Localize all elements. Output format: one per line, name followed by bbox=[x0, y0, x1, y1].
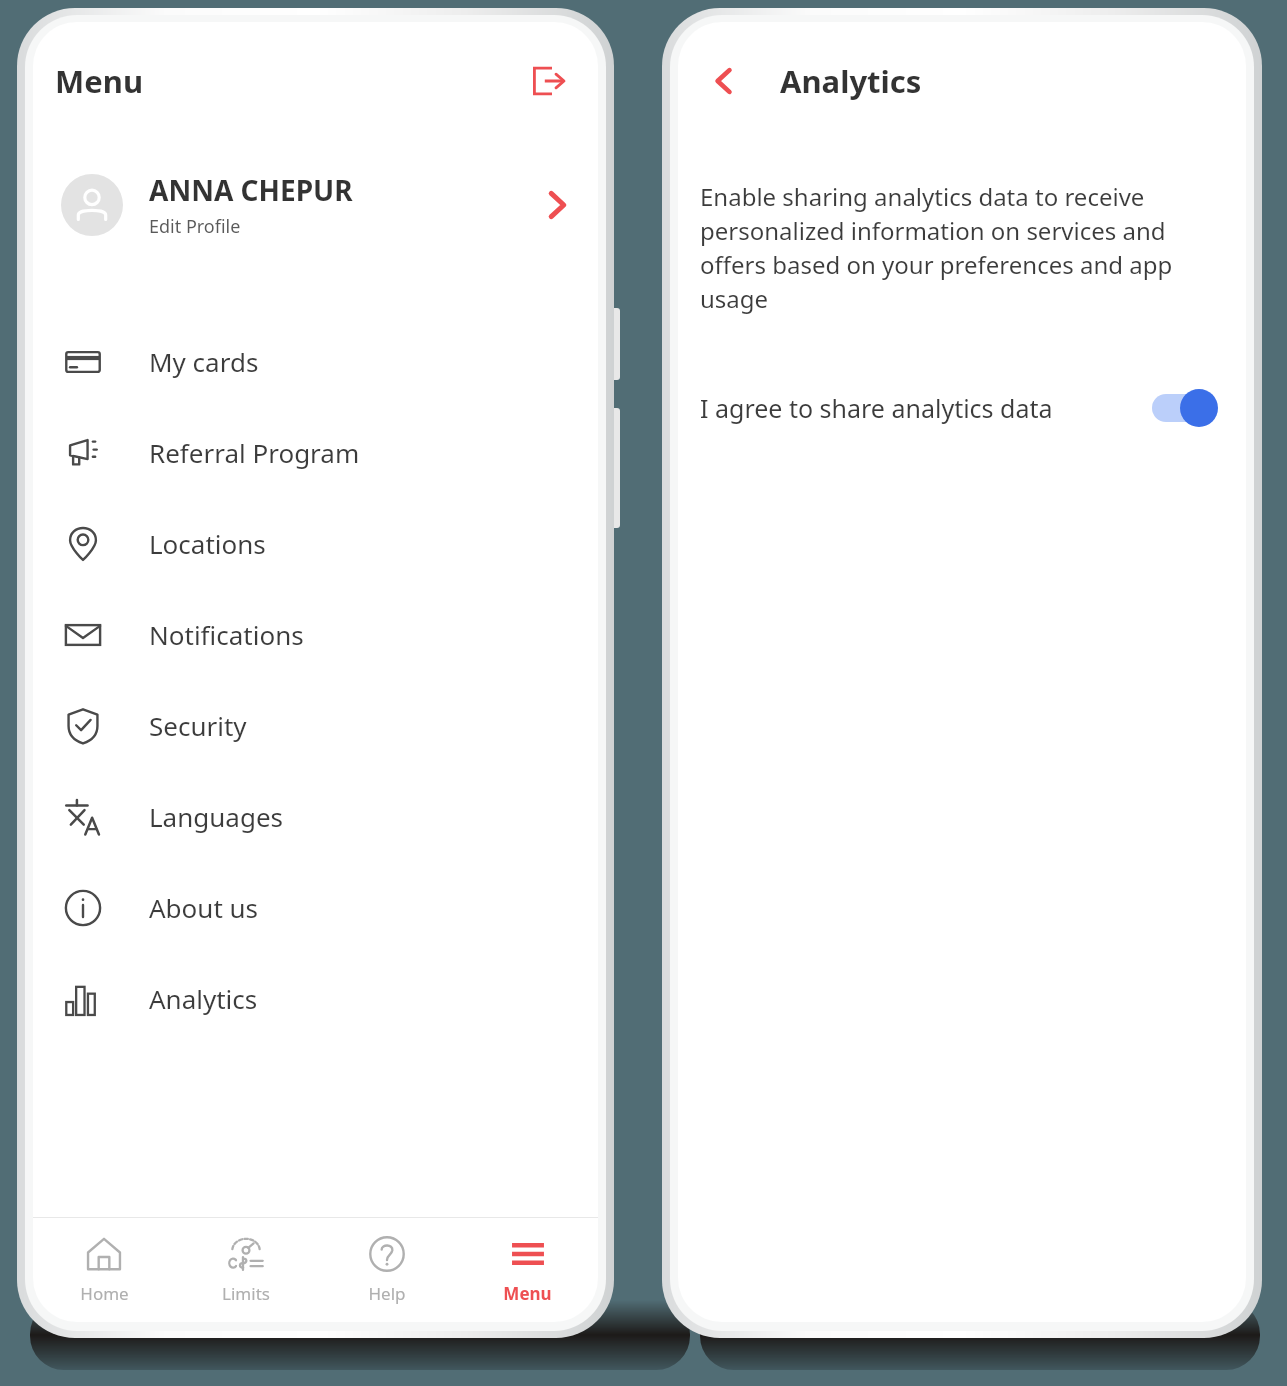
button[interactable]: Security bbox=[33, 680, 598, 771]
staticText: Enable sharing analytics data to receive… bbox=[700, 180, 1222, 315]
staticText: Help bbox=[368, 1282, 406, 1305]
staticText: About us bbox=[149, 890, 259, 925]
staticText: Languages bbox=[149, 799, 284, 834]
staticText: Analytics bbox=[780, 60, 922, 102]
staticText: I agree to share analytics data bbox=[700, 391, 1053, 425]
staticText: Analytics bbox=[149, 981, 258, 1016]
button[interactable]: Referral Program bbox=[33, 407, 598, 498]
button[interactable]: ANNA CHEPUR bbox=[33, 140, 598, 270]
staticText: Menu bbox=[503, 1282, 552, 1305]
button[interactable]: Help bbox=[316, 1218, 457, 1322]
button[interactable]: Back bbox=[696, 53, 752, 109]
staticText: Edit Profile bbox=[149, 214, 241, 239]
button[interactable]: Limits bbox=[175, 1218, 316, 1322]
staticText: ANNA CHEPUR bbox=[149, 171, 353, 209]
button[interactable]: About us bbox=[33, 862, 598, 953]
button[interactable]: Notifications bbox=[33, 589, 598, 680]
button[interactable]: Languages bbox=[33, 771, 598, 862]
button[interactable]: Menu bbox=[457, 1218, 598, 1322]
button[interactable]: My cards bbox=[33, 316, 598, 407]
staticText: Menu bbox=[55, 60, 144, 102]
button[interactable]: I agree to share analytics data bbox=[678, 373, 1246, 443]
staticText: Home bbox=[80, 1282, 129, 1305]
button[interactable]: Locations bbox=[33, 498, 598, 589]
staticText: Limits bbox=[222, 1282, 270, 1305]
staticText: Security bbox=[149, 708, 247, 743]
button[interactable]: Analytics bbox=[33, 953, 598, 1044]
button[interactable]: Log out bbox=[520, 53, 576, 109]
staticText: Referral Program bbox=[149, 435, 360, 470]
button[interactable]: Home bbox=[33, 1218, 175, 1322]
staticText: Notifications bbox=[149, 617, 304, 652]
staticText: My cards bbox=[149, 344, 259, 379]
staticText: Locations bbox=[149, 526, 266, 561]
